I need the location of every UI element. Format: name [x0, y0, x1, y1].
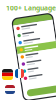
staticText: 100+ Languages: [6, 3, 56, 12]
